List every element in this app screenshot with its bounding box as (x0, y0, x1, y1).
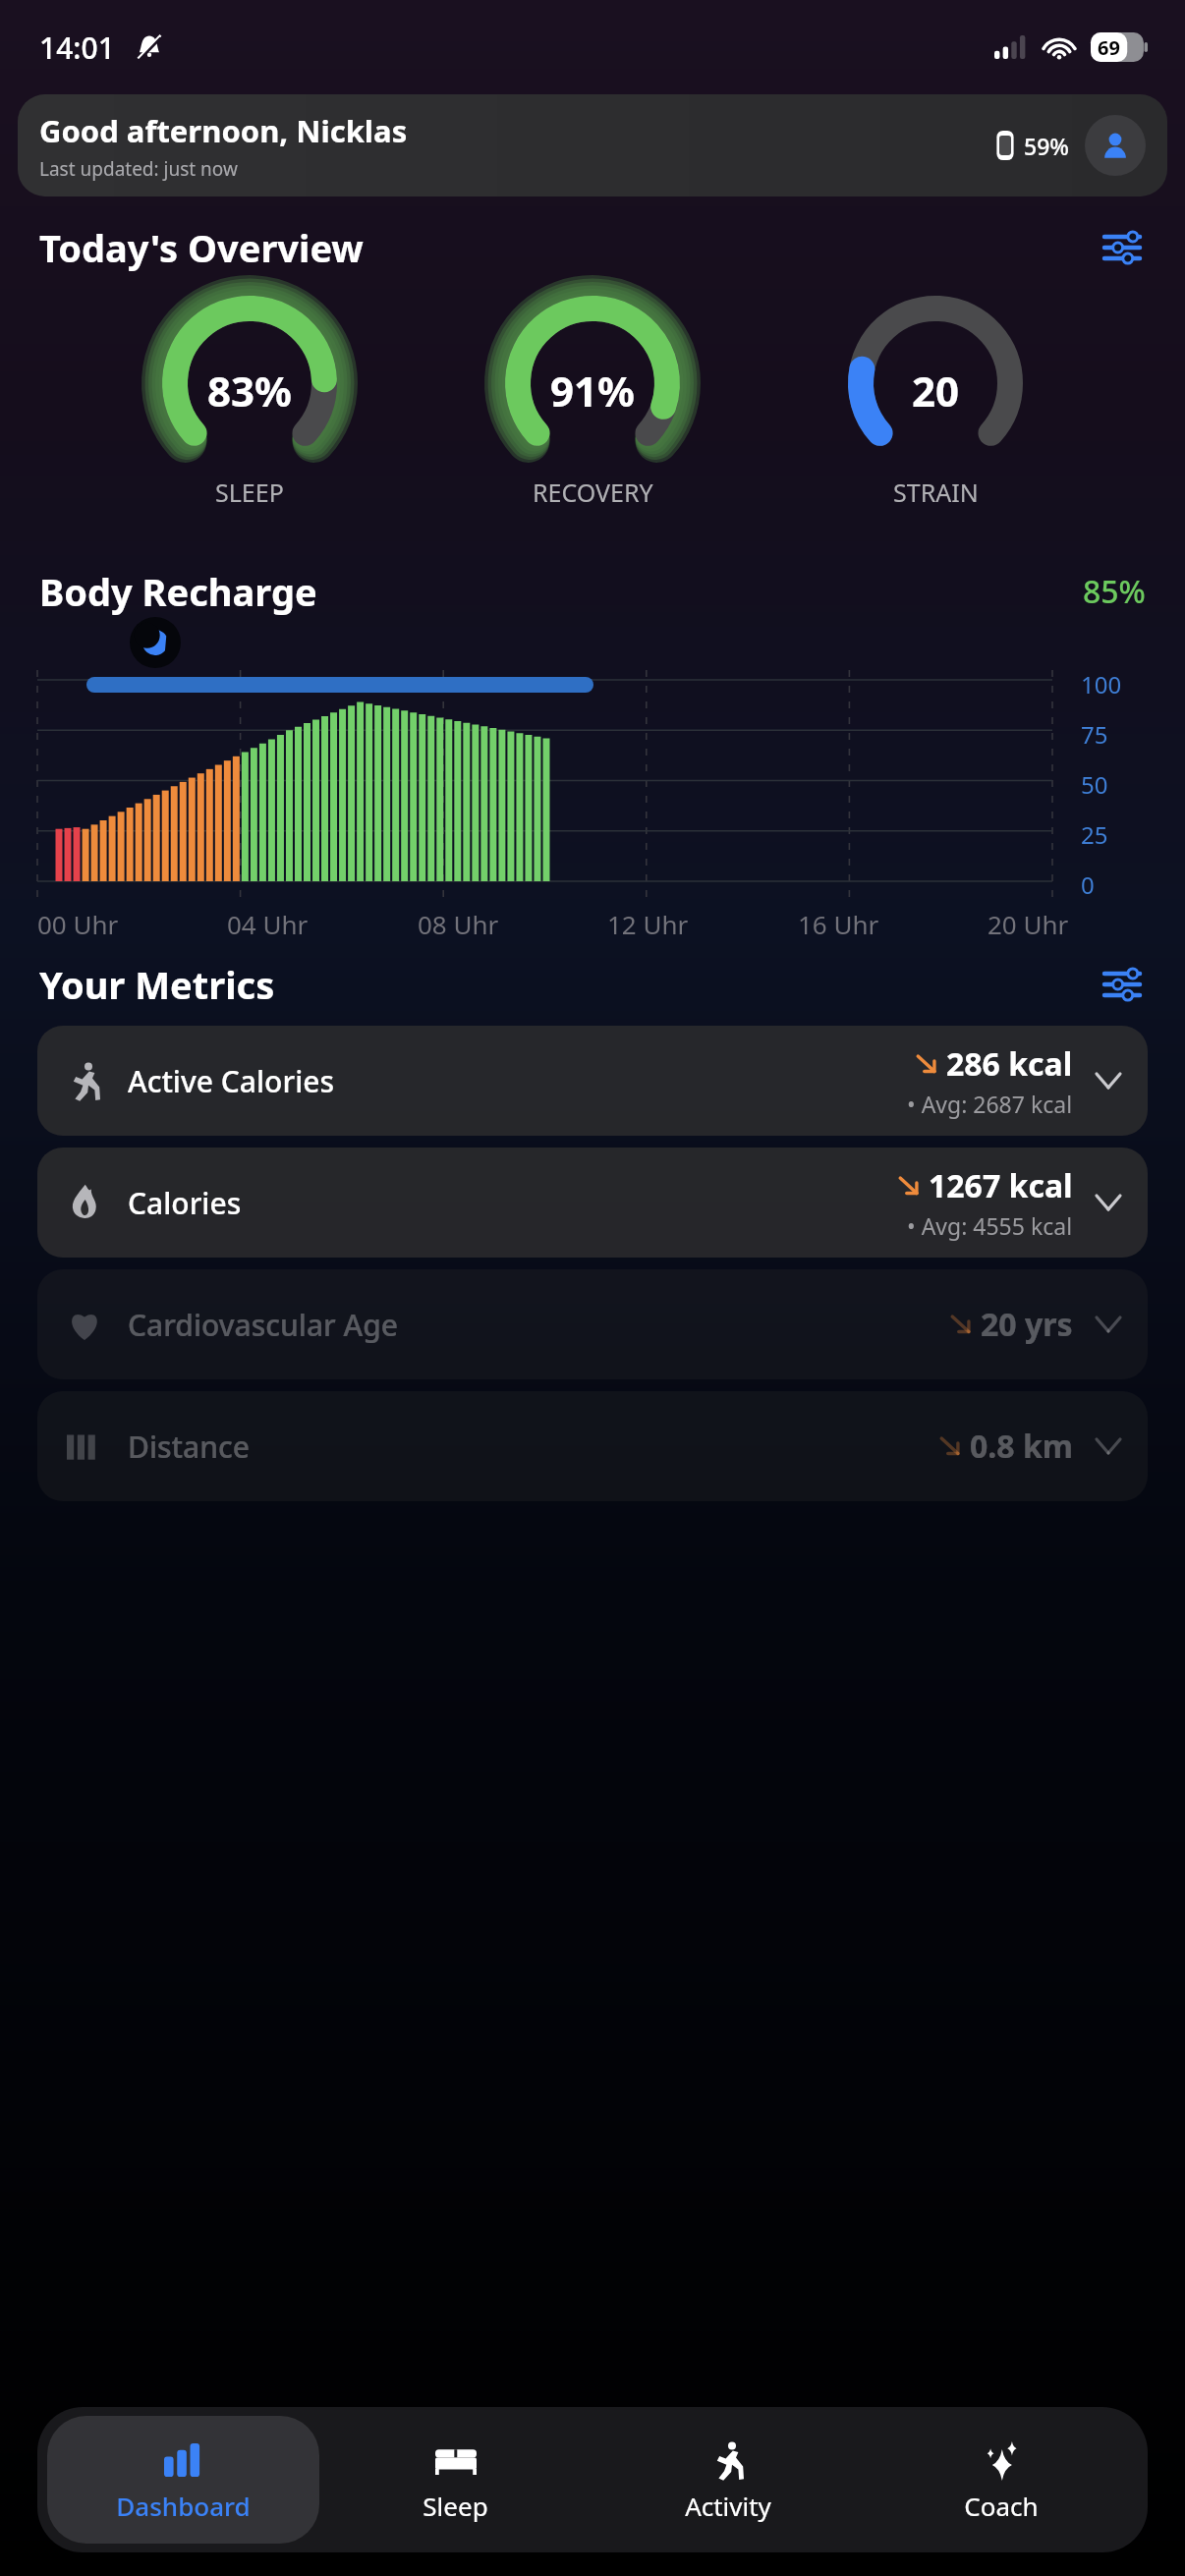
button[interactable]: Expand Calories (1091, 1185, 1126, 1220)
button[interactable]: Expand Cardiovascular Age (1091, 1307, 1126, 1342)
button[interactable]: Filter Today's Overview (1099, 224, 1146, 271)
staticText: 85% (1083, 570, 1146, 613)
staticText: SLEEP (215, 476, 284, 509)
button[interactable]: Good afternoon, Nicklas (18, 94, 1167, 196)
staticText: 12 Uhr (607, 907, 689, 941)
staticText: 69 (1098, 34, 1120, 61)
button[interactable]: Active Calories (37, 1026, 1148, 1136)
staticText: Your Metrics (39, 959, 1099, 1010)
button[interactable]: Dashboard (47, 2416, 319, 2544)
staticText: 83% (207, 363, 292, 419)
button[interactable]: Filter Your Metrics (1099, 961, 1146, 1008)
staticText: Cardiovascular Age (128, 1305, 950, 1345)
button[interactable]: Activity (592, 2416, 865, 2544)
staticText: 08 Uhr (418, 907, 499, 941)
staticText: • Avg: 2687 kcal (907, 1089, 1073, 1119)
staticText: 20 yrs (981, 1303, 1073, 1346)
staticText: 20 (912, 363, 960, 419)
button[interactable]: Coach (865, 2416, 1138, 2544)
button[interactable]: Calories (37, 1148, 1148, 1258)
staticText: 75 (1081, 718, 1108, 751)
staticText: Body Recharge (39, 566, 1083, 617)
staticText: 91% (550, 363, 635, 419)
staticText: 50 (1081, 768, 1108, 801)
staticText: Sleep (423, 2489, 488, 2523)
staticText: 0 (1081, 868, 1095, 901)
staticText: Distance (128, 1427, 939, 1467)
staticText: Calories (128, 1183, 898, 1223)
button[interactable]: 83% (156, 303, 343, 472)
staticText: Activity (685, 2489, 771, 2523)
staticText: 14:01 (39, 28, 115, 68)
staticText: Active Calories (128, 1061, 907, 1101)
staticText: 25 (1081, 818, 1108, 851)
staticText: 100 (1081, 668, 1122, 700)
staticText: 16 Uhr (798, 907, 879, 941)
staticText: • Avg: 4555 kcal (907, 1210, 1073, 1241)
button[interactable]: Profile (1085, 115, 1146, 176)
staticText: 286 kcal (946, 1042, 1073, 1086)
staticText: Today's Overview (39, 222, 1099, 273)
staticText: Dashboard (116, 2489, 251, 2523)
staticText: 1267 kcal (929, 1164, 1073, 1207)
button[interactable]: 91% (499, 303, 686, 472)
button[interactable]: Sleep (319, 2416, 592, 2544)
staticText: RECOVERY (533, 476, 653, 509)
staticText: STRAIN (893, 476, 979, 509)
button[interactable]: Expand Distance (1091, 1428, 1126, 1464)
staticText: Good afternoon, Nicklas (39, 110, 408, 151)
staticText: Last updated: just now (39, 156, 238, 182)
button[interactable]: 20 (842, 303, 1029, 472)
staticText: 0.8 km (970, 1425, 1073, 1468)
staticText: 04 Uhr (227, 907, 309, 941)
button[interactable]: Cardiovascular Age (37, 1269, 1148, 1379)
button[interactable]: Expand Active Calories (1091, 1063, 1126, 1098)
staticText: Coach (964, 2489, 1039, 2523)
staticText: 20 Uhr (987, 907, 1069, 941)
staticText: 59% (1024, 131, 1069, 161)
staticText: 00 Uhr (37, 907, 119, 941)
button[interactable]: Distance (37, 1391, 1148, 1501)
